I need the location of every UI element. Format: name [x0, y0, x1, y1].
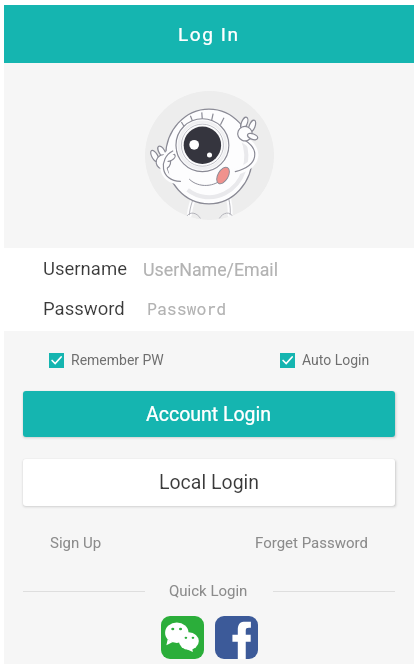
staticText: Remember PW [71, 352, 164, 368]
staticText: Password [43, 298, 125, 320]
button[interactable]: Account Login [23, 391, 395, 437]
staticText: Quick Login [169, 582, 248, 600]
button[interactable]: Forget Password [255, 534, 368, 552]
button[interactable]: Sign Up [50, 534, 102, 552]
button[interactable]: Username [4, 255, 414, 283]
button[interactable]: Remember PW [49, 352, 164, 368]
staticText: Local Login [159, 471, 260, 494]
staticText: Log In [178, 23, 240, 45]
button[interactable]: Log in with WeChat [161, 616, 204, 659]
button[interactable]: Auto Login [280, 352, 370, 368]
staticText: Account Login [146, 403, 272, 426]
staticText: UserName/Email [143, 259, 279, 280]
staticText: Password [147, 298, 227, 320]
button[interactable]: Local Login [23, 459, 395, 506]
staticText: Username [43, 258, 127, 280]
button[interactable]: Password [4, 295, 414, 323]
staticText: Auto Login [302, 352, 370, 368]
staticText: Forget Password [255, 534, 368, 552]
button[interactable]: Log in with Facebook [215, 616, 258, 659]
staticText: Sign Up [50, 534, 102, 552]
